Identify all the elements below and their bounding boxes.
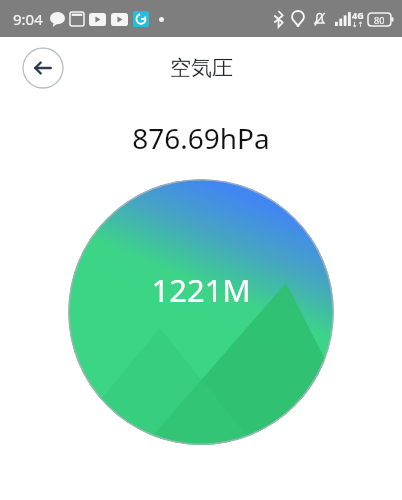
staticText: 空気圧 xyxy=(170,55,233,81)
button[interactable]: Altitude 1221M xyxy=(68,179,334,445)
staticText: 4G xyxy=(352,9,364,21)
staticText: 9:04 xyxy=(13,9,43,29)
staticText: 1221M xyxy=(151,269,251,311)
staticText: ↓↑ xyxy=(352,21,364,29)
staticText: 80 xyxy=(374,14,385,26)
button[interactable]: Back xyxy=(22,47,64,89)
staticText: 876.69hPa xyxy=(132,119,270,157)
